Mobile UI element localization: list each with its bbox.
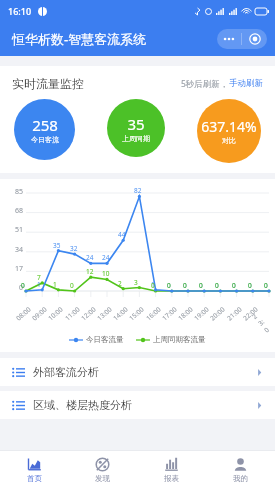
staticText: 22:00 — [241, 304, 260, 323]
staticText: 手动刷新 — [229, 78, 263, 89]
button[interactable]: 手动刷新 — [229, 78, 263, 89]
button[interactable]: Close — [242, 29, 267, 49]
staticText: 0 — [19, 283, 24, 293]
staticText: 258 — [32, 115, 58, 135]
staticText: 0 — [248, 281, 252, 290]
staticText: 35 — [53, 241, 61, 250]
staticText: 恒华析数-智慧客流系统 — [12, 30, 147, 48]
button[interactable]: 258 — [14, 99, 75, 160]
staticText: 17 — [15, 264, 24, 274]
staticText: 14:00 — [111, 304, 130, 323]
staticText: 外部客流分析 — [33, 365, 99, 379]
button[interactable]: 35 — [107, 99, 165, 157]
staticText: 7 — [37, 273, 41, 282]
staticText: 今日客流量 — [86, 335, 124, 344]
staticText: 23:00 — [250, 310, 272, 334]
staticText: 0 — [21, 281, 25, 290]
staticText: 637.14% — [201, 117, 257, 136]
staticText: 0 — [232, 281, 236, 290]
staticText: 0 — [264, 281, 268, 290]
staticText: 10 — [102, 269, 110, 278]
staticText: 对比 — [222, 136, 236, 145]
staticText: 1 — [53, 280, 57, 289]
staticText: 0 — [167, 281, 171, 290]
staticText: 0 — [199, 281, 203, 290]
staticText: 11:00 — [63, 304, 82, 323]
staticText: 0 — [215, 281, 219, 290]
button[interactable]: 首页 — [0, 451, 68, 489]
button[interactable]: 发现 — [68, 451, 137, 489]
staticText: 35 — [127, 114, 145, 134]
staticText: 首页 — [27, 474, 42, 483]
staticText: 18:00 — [176, 304, 195, 323]
staticText: 82 — [134, 186, 142, 195]
staticText: 15:00 — [127, 304, 146, 323]
button[interactable]: 637.14% — [197, 99, 261, 163]
staticText: 1 — [37, 280, 41, 289]
staticText: 32 — [70, 244, 78, 253]
staticText: 21:00 — [225, 304, 244, 323]
button[interactable]: More — [217, 29, 241, 49]
staticText: 34 — [15, 245, 24, 255]
staticText: 0 — [183, 281, 187, 290]
staticText: 68 — [15, 206, 24, 216]
button[interactable]: 我的 — [206, 451, 275, 489]
staticText: 3 — [134, 278, 138, 287]
staticText: 上周同期客流量 — [153, 335, 206, 344]
staticText: 2 — [118, 279, 122, 288]
staticText: 0 — [21, 281, 25, 290]
staticText: 0 — [70, 281, 74, 290]
button[interactable]: 报表 — [137, 451, 206, 489]
staticText: 51 — [15, 225, 24, 235]
staticText: 19:00 — [192, 304, 211, 323]
staticText: 上周同期 — [122, 134, 150, 143]
staticText: 85 — [15, 187, 24, 197]
staticText: 13:00 — [95, 304, 114, 323]
staticText: 0 — [248, 281, 252, 290]
staticText: 发现 — [95, 474, 110, 483]
staticText: 今日客流 — [31, 135, 59, 144]
staticText: 0 — [264, 281, 268, 290]
staticText: 08:00 — [14, 304, 33, 323]
staticText: 16:00 — [144, 304, 163, 323]
staticText: 12:00 — [79, 304, 98, 323]
button[interactable]: 区域、楼层热度分析 — [0, 391, 275, 419]
staticText: 0 — [232, 281, 236, 290]
staticText: 10:00 — [46, 304, 65, 323]
staticText: 09:00 — [30, 304, 49, 323]
staticText: 实时流量监控 — [12, 76, 84, 91]
staticText: 24 — [102, 253, 110, 262]
staticText: 12 — [86, 267, 94, 276]
staticText: 报表 — [164, 474, 179, 483]
staticText: 区域、楼层热度分析 — [33, 398, 132, 412]
staticText: 16:10 — [8, 5, 32, 17]
staticText: 1 — [151, 280, 155, 289]
staticText: 我的 — [233, 474, 248, 483]
staticText: 44 — [118, 230, 126, 239]
staticText: 0 — [215, 281, 219, 290]
staticText: 0 — [167, 281, 171, 290]
staticText: 0 — [199, 281, 203, 290]
staticText: 0 — [151, 281, 155, 290]
staticText: 24 — [86, 253, 94, 262]
button[interactable]: 外部客流分析 — [0, 358, 275, 386]
staticText: 5秒后刷新， — [181, 78, 229, 90]
staticText: 0 — [183, 281, 187, 290]
staticText: 17:00 — [160, 304, 179, 323]
staticText: 20:00 — [208, 304, 227, 323]
